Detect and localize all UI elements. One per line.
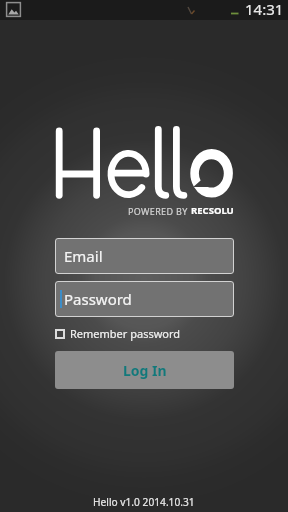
staticText: Log In — [123, 361, 167, 380]
staticText: Hello v1.0 2014.10.31 — [93, 495, 195, 509]
staticText: POWERED BY — [128, 205, 191, 217]
staticText: 14:31 — [245, 0, 284, 19]
button[interactable]: Email — [55, 238, 234, 274]
staticText: Password — [64, 289, 132, 309]
staticText: Remember password — [70, 326, 181, 341]
button[interactable]: Password — [55, 281, 234, 317]
staticText: RECSOLU — [191, 204, 234, 217]
button[interactable]: Remember password — [55, 326, 234, 341]
button[interactable]: Log In — [55, 351, 234, 389]
other: Screenshot saved — [6, 2, 21, 17]
staticText: Email — [64, 246, 103, 266]
